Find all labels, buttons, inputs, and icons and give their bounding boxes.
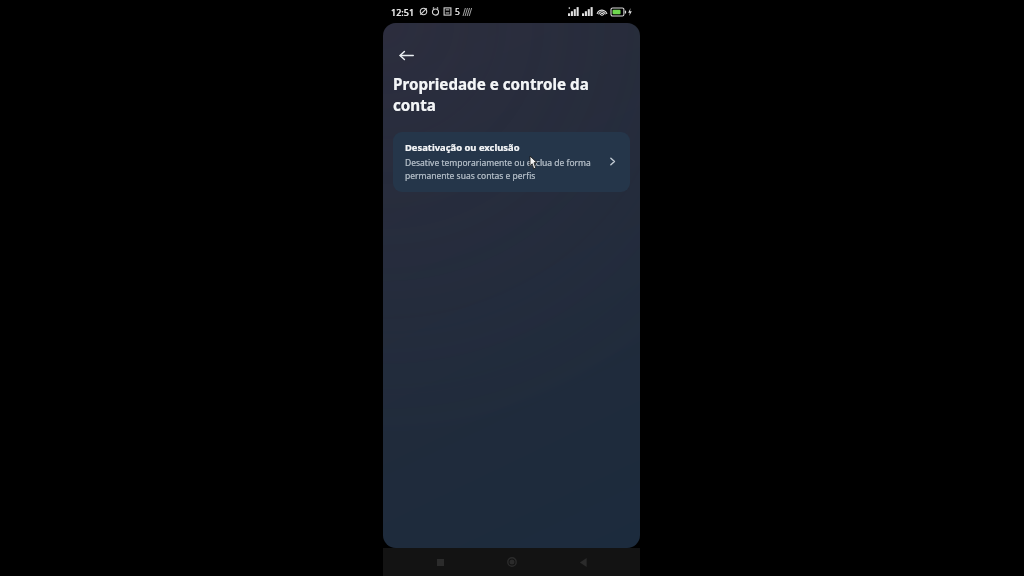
staticText: Desative temporariamente ou exclua de fo… xyxy=(405,157,599,181)
staticText: 5 xyxy=(455,6,460,18)
button[interactable]: Desativação ou exclusão xyxy=(393,132,630,192)
button[interactable]: Home xyxy=(497,548,527,576)
button[interactable]: Back xyxy=(568,548,598,576)
button[interactable]: Back xyxy=(388,37,424,73)
staticText: Desativação ou exclusão xyxy=(405,141,520,154)
staticText: Propriedade e controle da conta xyxy=(393,74,606,116)
button[interactable]: Recent apps xyxy=(425,548,455,576)
staticText: 12:51 xyxy=(391,6,415,18)
